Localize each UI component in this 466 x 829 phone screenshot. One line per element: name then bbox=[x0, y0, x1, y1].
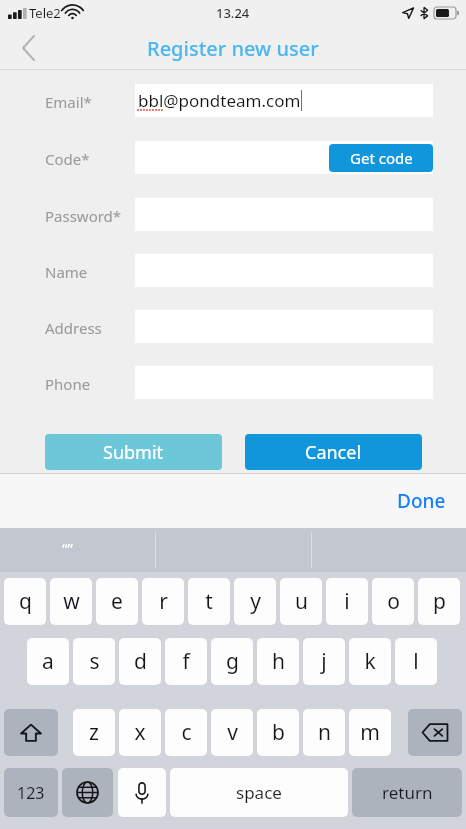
staticText: t bbox=[205, 587, 213, 616]
button[interactable]: Change keyboard language bbox=[62, 768, 113, 817]
button[interactable]: a bbox=[27, 638, 69, 685]
button[interactable]: Get code bbox=[329, 144, 433, 172]
button[interactable]: p bbox=[418, 578, 460, 625]
staticText: Submit bbox=[103, 440, 164, 465]
button[interactable]: y bbox=[234, 578, 276, 625]
staticText: Name bbox=[45, 262, 88, 282]
staticText: l bbox=[413, 647, 419, 676]
staticText: Code* bbox=[45, 149, 90, 169]
staticText: v bbox=[227, 718, 238, 747]
button[interactable]: g bbox=[211, 638, 253, 685]
button[interactable]: Submit bbox=[45, 434, 222, 470]
staticText: Tele2 bbox=[29, 4, 61, 22]
staticText: q bbox=[19, 587, 32, 616]
staticText: m bbox=[360, 718, 380, 747]
button[interactable]: i bbox=[326, 578, 368, 625]
staticText: a bbox=[42, 647, 54, 676]
button[interactable]: return bbox=[352, 768, 462, 817]
button[interactable]: s bbox=[73, 638, 115, 685]
staticText: Register new user bbox=[147, 35, 319, 62]
button[interactable]: w bbox=[50, 578, 92, 625]
staticText: 13.24 bbox=[216, 4, 250, 22]
staticText: u bbox=[295, 587, 308, 616]
button[interactable]: Back bbox=[0, 26, 56, 70]
staticText: w bbox=[63, 587, 80, 616]
button[interactable]: b bbox=[257, 709, 299, 756]
staticText: Phone bbox=[45, 374, 91, 394]
button[interactable]: n bbox=[303, 709, 345, 756]
staticText: d bbox=[134, 647, 147, 676]
button[interactable]: z bbox=[73, 709, 115, 756]
button[interactable]: m bbox=[349, 709, 391, 756]
button[interactable]: j bbox=[303, 638, 345, 685]
staticText: space bbox=[236, 781, 282, 804]
staticText: i bbox=[344, 587, 350, 616]
staticText: Cancel bbox=[305, 440, 362, 465]
button[interactable]: Shift bbox=[4, 709, 58, 756]
button[interactable]: h bbox=[257, 638, 299, 685]
button[interactable]: k bbox=[349, 638, 391, 685]
button[interactable]: d bbox=[119, 638, 161, 685]
button[interactable]: o bbox=[372, 578, 414, 625]
button[interactable]: r bbox=[142, 578, 184, 625]
button[interactable]: l bbox=[395, 638, 437, 685]
staticText: s bbox=[89, 647, 100, 676]
button[interactable]: space bbox=[170, 768, 348, 817]
staticText: j bbox=[321, 647, 327, 676]
staticText: b bbox=[272, 718, 285, 747]
staticText: g bbox=[226, 647, 239, 676]
staticText: 123 bbox=[17, 782, 45, 804]
staticText: n bbox=[318, 718, 331, 747]
button[interactable]: 123 bbox=[4, 768, 58, 817]
button[interactable]: t bbox=[188, 578, 230, 625]
button[interactable]: Cancel bbox=[245, 434, 422, 470]
staticText: f bbox=[182, 647, 190, 676]
staticText: k bbox=[364, 647, 376, 676]
button[interactable]: f bbox=[165, 638, 207, 685]
staticText: Email* bbox=[45, 92, 92, 112]
staticText: Get code bbox=[350, 148, 413, 168]
staticText: r bbox=[159, 587, 168, 616]
staticText: Address bbox=[45, 318, 102, 338]
button[interactable]: Backspace bbox=[408, 709, 462, 756]
button[interactable]: v bbox=[211, 709, 253, 756]
button[interactable]: q bbox=[4, 578, 46, 625]
button[interactable]: Dictation bbox=[118, 768, 166, 817]
staticText: c bbox=[181, 718, 192, 747]
staticText: “” bbox=[62, 538, 73, 558]
button[interactable]: c bbox=[165, 709, 207, 756]
staticText: p bbox=[433, 587, 446, 616]
staticText: Password* bbox=[45, 206, 122, 226]
button[interactable]: Done bbox=[391, 482, 452, 520]
button[interactable]: e bbox=[96, 578, 138, 625]
staticText: bbl@pondteam.com bbox=[138, 89, 301, 112]
button[interactable]: u bbox=[280, 578, 322, 625]
button[interactable] bbox=[135, 141, 433, 174]
staticText: x bbox=[134, 718, 146, 747]
staticText: y bbox=[250, 587, 261, 616]
staticText: Done bbox=[397, 488, 446, 514]
staticText: return bbox=[382, 781, 433, 804]
staticText: e bbox=[111, 587, 123, 616]
staticText: o bbox=[387, 587, 400, 616]
button[interactable]: bbl@pondteam.com bbox=[135, 84, 433, 117]
staticText: h bbox=[272, 647, 285, 676]
staticText: z bbox=[89, 718, 99, 747]
button[interactable]: x bbox=[119, 709, 161, 756]
